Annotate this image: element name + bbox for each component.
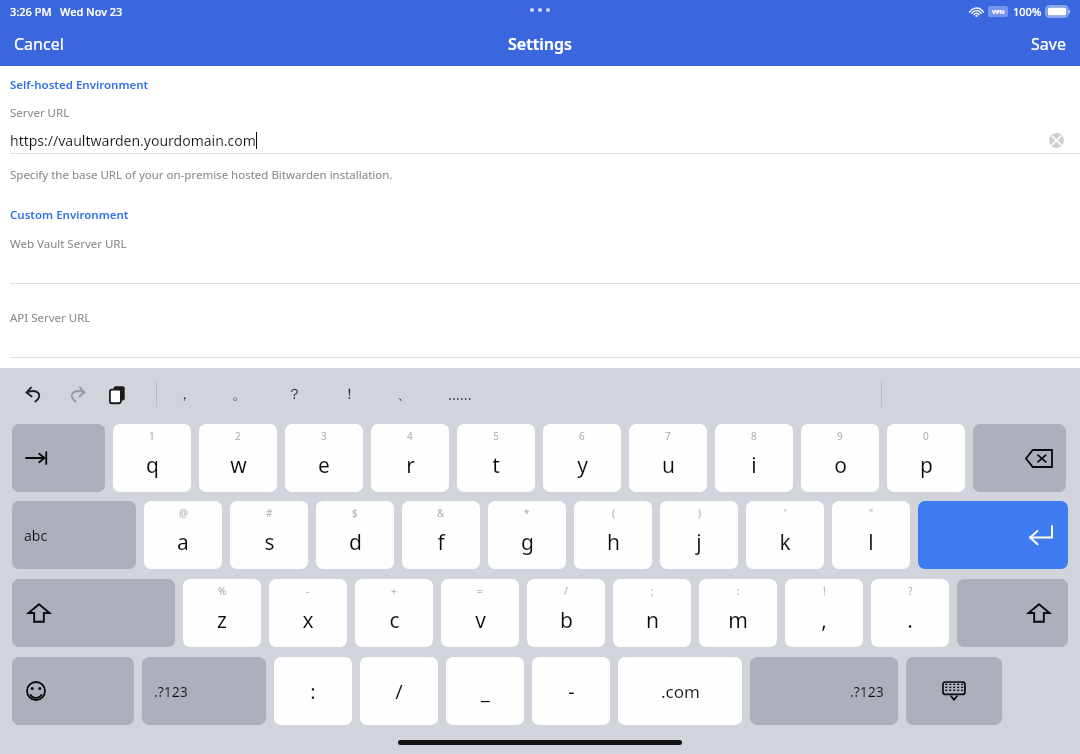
button[interactable]: Emoji (12, 657, 134, 725)
button[interactable]: : (274, 657, 352, 725)
staticText: 、 (397, 385, 412, 404)
button[interactable]: / (360, 657, 438, 725)
staticText: .?123 (850, 682, 884, 701)
button[interactable]: 5 (457, 424, 535, 492)
button[interactable]: 。 (212, 368, 267, 420)
button[interactable]: ' (746, 501, 824, 569)
staticText: https://vaultwarden.yourdomain.com (10, 131, 256, 150)
button[interactable]: …… (432, 368, 487, 420)
button[interactable]: 2 (199, 424, 277, 492)
button[interactable]: ? (871, 579, 949, 647)
button[interactable]: 0 (887, 424, 965, 492)
staticText: c (389, 606, 400, 635)
staticText: abc (24, 526, 48, 545)
button[interactable]: 6 (543, 424, 621, 492)
staticText: ' (784, 506, 787, 520)
button[interactable]: Shift (12, 579, 175, 647)
button[interactable]: " (832, 501, 910, 569)
button[interactable]: Save (1017, 22, 1080, 66)
button[interactable]: 、 (377, 368, 432, 420)
staticText: i (751, 451, 757, 480)
staticText: Cancel (14, 33, 64, 55)
staticText: # (266, 506, 273, 520)
button[interactable]: # (230, 501, 308, 569)
staticText: z (217, 606, 227, 635)
staticText: % (218, 584, 227, 598)
staticText: _ (481, 678, 490, 705)
staticText: / (564, 584, 568, 598)
staticText: Web Vault Server URL (10, 236, 127, 252)
staticText: 。 (232, 385, 247, 404)
staticText: / (395, 678, 403, 705)
staticText: …… (448, 384, 472, 404)
button[interactable]: Paste (102, 379, 132, 409)
button[interactable]: 9 (801, 424, 879, 492)
button[interactable]: Undo (20, 379, 50, 409)
staticText: g (521, 528, 534, 557)
button[interactable]: Backspace (973, 424, 1066, 492)
staticText: = (477, 584, 483, 598)
staticText: v (475, 606, 486, 635)
button[interactable]: ( (574, 501, 652, 569)
staticText: p (920, 451, 933, 480)
button[interactable]: Tab (12, 424, 105, 492)
button[interactable]: .?123 (142, 657, 266, 725)
button[interactable]: Clear text (1049, 133, 1064, 148)
staticText: + (391, 584, 397, 598)
button[interactable]: Return (918, 501, 1068, 569)
button[interactable]: + (355, 579, 433, 647)
button[interactable]: - (532, 657, 610, 725)
button[interactable]: 1 (113, 424, 191, 492)
button[interactable]: / (527, 579, 605, 647)
button[interactable]: % (183, 579, 261, 647)
staticText: h (607, 528, 620, 557)
staticText: x (302, 606, 314, 635)
button[interactable]: abc (12, 501, 136, 569)
button[interactable]: ) (660, 501, 738, 569)
button[interactable]: 8 (715, 424, 793, 492)
button[interactable]: * (488, 501, 566, 569)
button[interactable]: Hide keyboard (906, 657, 1002, 725)
button[interactable]: $ (316, 501, 394, 569)
staticText: 4 (407, 429, 413, 443)
button[interactable]: 4 (371, 424, 449, 492)
staticText: 1 (149, 429, 155, 443)
staticText: d (349, 528, 362, 557)
staticText: j (696, 528, 702, 557)
button[interactable]: 3 (285, 424, 363, 492)
button[interactable]: - (269, 579, 347, 647)
button[interactable]: : (699, 579, 777, 647)
button[interactable]: @ (144, 501, 222, 569)
button[interactable]: ! (785, 579, 863, 647)
button[interactable]: 7 (629, 424, 707, 492)
staticText: Server URL (10, 105, 70, 121)
button[interactable]: Cancel (0, 22, 78, 66)
button[interactable]: _ (446, 657, 524, 725)
staticText: f (437, 528, 445, 557)
button[interactable]: & (402, 501, 480, 569)
button[interactable]: .com (618, 657, 742, 725)
button[interactable]: ！ (322, 368, 377, 420)
staticText: 9 (837, 429, 843, 443)
button[interactable]: Redo (61, 379, 91, 409)
staticText: r (406, 451, 415, 480)
staticText: m (728, 606, 748, 635)
staticText: ? (908, 584, 913, 598)
button[interactable]: ; (613, 579, 691, 647)
staticText: @ (179, 506, 188, 520)
staticText: API Server URL (10, 310, 91, 326)
staticText: 100% (1013, 4, 1042, 19)
button[interactable]: .?123 (750, 657, 898, 725)
staticText: u (662, 451, 675, 480)
staticText: 5 (493, 429, 499, 443)
button[interactable]: = (441, 579, 519, 647)
staticText: t (492, 451, 500, 480)
button[interactable]: ， (157, 368, 212, 420)
staticText: ) (698, 506, 701, 520)
staticText: e (318, 451, 330, 480)
staticText: b (560, 606, 573, 635)
staticText: y (577, 451, 588, 480)
staticText: 8 (751, 429, 757, 443)
button[interactable]: Shift (957, 579, 1068, 647)
button[interactable]: ？ (267, 368, 322, 420)
